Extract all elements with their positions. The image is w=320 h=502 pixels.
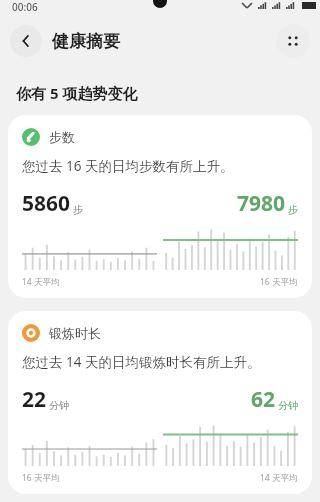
staticText: 您过去 16 天的日均步数有所上升。 [22, 157, 234, 175]
staticText: 22 [22, 385, 47, 414]
staticText: 14 天平均 [260, 472, 298, 484]
staticText: 步数 [49, 129, 75, 145]
staticText: 62 [251, 385, 276, 414]
staticText: 分钟 [278, 399, 298, 412]
staticText: 您过去 14 天的日均锻炼时长有所上升。 [22, 353, 261, 371]
button[interactable]: 步数 [8, 115, 312, 298]
staticText: 健康摘要 [52, 31, 120, 52]
staticText: 分钟 [49, 399, 69, 412]
staticText: 16 天平均 [22, 472, 60, 484]
staticText: 14 天平均 [22, 276, 60, 288]
staticText: 7980 [237, 189, 286, 218]
staticText: 00:06 [12, 0, 38, 13]
staticText: 5860 [22, 189, 71, 218]
staticText: 锻炼时长 [49, 325, 101, 341]
button[interactable]: More options [276, 24, 310, 58]
staticText: 步 [73, 203, 83, 216]
staticText: 16 天平均 [260, 276, 298, 288]
button[interactable]: 锻炼时长 [8, 311, 312, 494]
button[interactable]: Back [10, 25, 42, 57]
staticText: 步 [288, 203, 298, 216]
staticText: 你有 5 项趋势变化 [16, 83, 138, 103]
